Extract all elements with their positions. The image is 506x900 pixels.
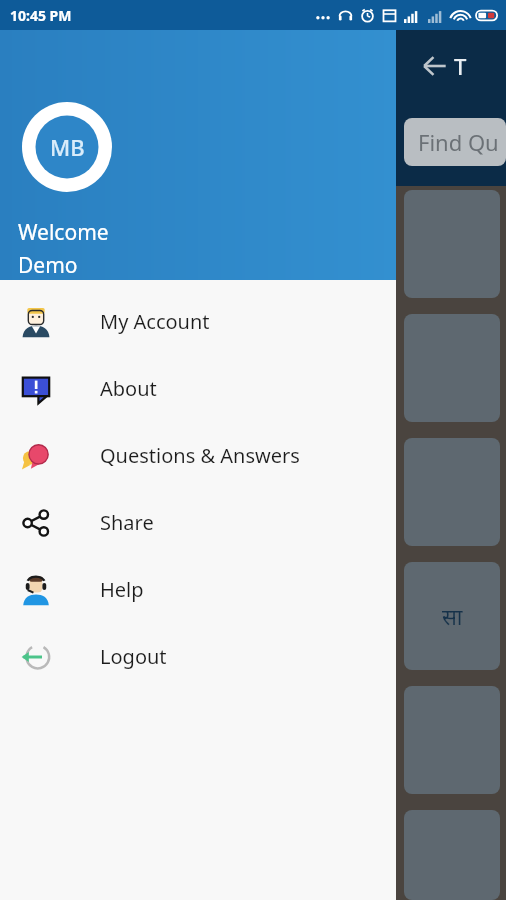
button[interactable]: Find Qu xyxy=(404,118,506,166)
button[interactable] xyxy=(404,686,500,794)
button[interactable]: Logout xyxy=(0,623,396,690)
button[interactable] xyxy=(404,810,500,900)
button[interactable] xyxy=(404,438,500,546)
button[interactable]: Back xyxy=(414,46,454,86)
button[interactable]: My Account xyxy=(0,288,396,355)
staticText: Questions & Answers xyxy=(100,442,300,469)
staticText: Demo xyxy=(18,251,78,280)
button[interactable]: Share xyxy=(0,489,396,556)
staticText: Logout xyxy=(100,643,167,670)
staticText: MB xyxy=(50,132,85,162)
staticText: About xyxy=(100,375,157,402)
button[interactable]: Questions & Answers xyxy=(0,422,396,489)
staticText: 10:45 PM xyxy=(10,6,72,25)
staticText: Help xyxy=(100,576,144,603)
staticText: Welcome xyxy=(18,218,109,247)
staticText: T xyxy=(454,51,467,81)
button[interactable] xyxy=(404,314,500,422)
staticText: Share xyxy=(100,509,154,536)
button[interactable] xyxy=(404,190,500,298)
button[interactable]: About xyxy=(0,355,396,422)
staticText: सा xyxy=(442,601,463,631)
staticText: My Account xyxy=(100,308,210,335)
button[interactable]: Help xyxy=(0,556,396,623)
button[interactable]: सा xyxy=(404,562,500,670)
staticText: Find Qu xyxy=(418,127,499,157)
